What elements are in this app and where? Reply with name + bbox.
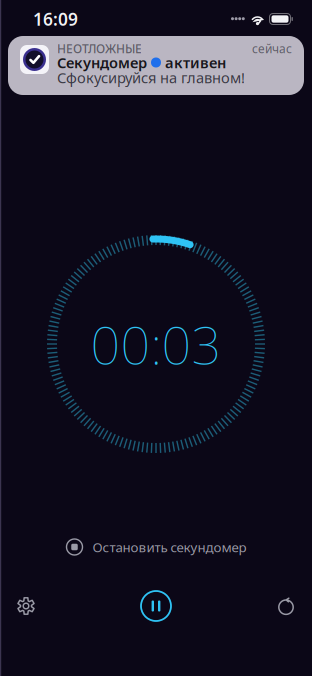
staticText: 16:09 — [33, 7, 78, 30]
staticText: 00:03 — [90, 309, 221, 379]
staticText: НЕОТЛОЖНЫЕ — [57, 40, 142, 56]
staticText: Секундомер — [57, 53, 147, 72]
button[interactable]: Pause — [134, 584, 178, 628]
staticText: сейчас — [252, 40, 292, 56]
staticText: активен — [165, 53, 226, 72]
staticText: Остановить секундомер — [92, 538, 246, 556]
button[interactable]: Остановить секундомер — [55, 532, 256, 562]
staticText: Сфокусируйся на главном! — [57, 68, 245, 87]
button[interactable]: Reset — [264, 584, 308, 628]
button[interactable]: Settings — [4, 584, 48, 628]
